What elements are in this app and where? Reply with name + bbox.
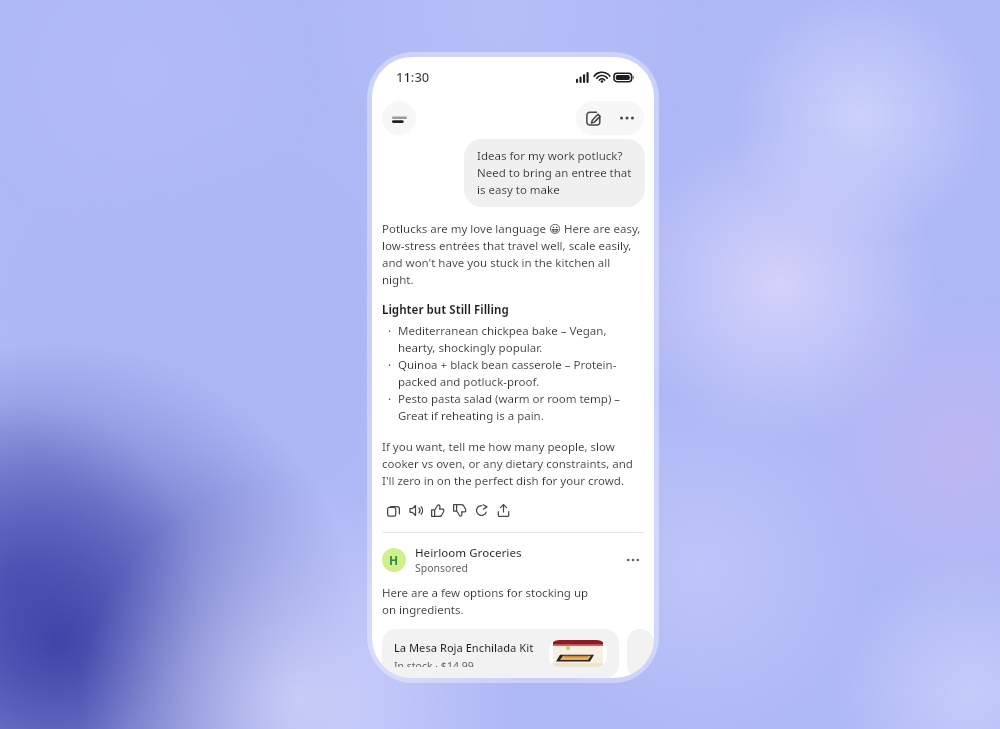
button[interactable]: Enchilada Sauce: [627, 629, 654, 678]
staticText: Quinoa + black bean casserole – Protein-…: [398, 357, 617, 390]
staticText: Here are a few options for stocking up o…: [382, 585, 589, 617]
button[interactable]: Regenerate: [470, 499, 492, 521]
staticText: ·: [388, 391, 392, 407]
staticText: Lighter but Still Filling: [382, 302, 509, 318]
staticText: Heirloom Groceries: [415, 545, 522, 561]
staticText: Ideas for my work potluck? Need to bring…: [477, 148, 632, 198]
button[interactable]: New chat: [576, 101, 610, 135]
staticText: In stock · $14.99: [394, 659, 474, 667]
button[interactable]: More options: [610, 101, 644, 135]
button[interactable]: Ad options: [622, 549, 644, 571]
staticText: ·: [388, 323, 392, 339]
staticText: Pesto pasta salad (warm or room temp) – …: [398, 391, 621, 424]
button[interactable]: La Mesa Roja Enchilada Kit: [382, 629, 619, 678]
staticText: La Mesa Roja Enchilada Kit: [394, 640, 534, 655]
button[interactable]: Share: [492, 499, 514, 521]
staticText: If you want, tell me how many people, sl…: [382, 439, 633, 489]
staticText: H: [389, 552, 399, 568]
staticText: ·: [388, 357, 392, 373]
button[interactable]: Menu: [382, 101, 416, 135]
staticText: Potlucks are my love language 😀 Here are…: [382, 221, 644, 288]
button[interactable]: Ideas for my work potluck? Need to bring…: [464, 139, 645, 207]
button[interactable]: Bad response: [448, 499, 470, 521]
button[interactable]: Copy: [382, 499, 404, 521]
staticText: Mediterranean chickpea bake – Vegan, hea…: [398, 323, 607, 356]
button[interactable]: Good response: [426, 499, 448, 521]
staticText: Sponsored: [415, 561, 468, 575]
button[interactable]: Read aloud: [404, 499, 426, 521]
staticText: 11:30: [396, 68, 430, 86]
